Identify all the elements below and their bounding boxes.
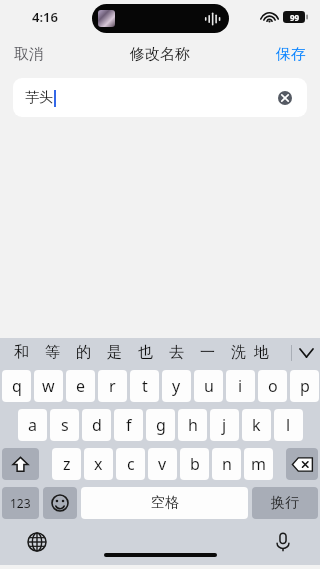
button[interactable]: d bbox=[82, 409, 111, 441]
staticText: 地 bbox=[254, 343, 268, 362]
staticText: 的 bbox=[76, 343, 91, 362]
staticText: h bbox=[188, 414, 198, 436]
button[interactable]: 地 bbox=[254, 338, 268, 367]
staticText: q bbox=[12, 375, 22, 397]
button[interactable]: 和 bbox=[6, 338, 37, 367]
button[interactable]: q bbox=[2, 370, 31, 402]
button[interactable]: Clear text bbox=[273, 86, 297, 110]
staticText: x bbox=[94, 453, 103, 475]
button[interactable]: t bbox=[130, 370, 159, 402]
staticText: i bbox=[238, 375, 243, 397]
staticText: n bbox=[222, 453, 232, 475]
button[interactable]: 芋头 bbox=[13, 78, 307, 117]
staticText: l bbox=[286, 414, 291, 436]
button[interactable]: Switch keyboard language bbox=[22, 527, 52, 557]
staticText: 取消 bbox=[14, 45, 44, 64]
button[interactable]: Emoji bbox=[43, 487, 77, 519]
staticText: 等 bbox=[45, 343, 60, 362]
button[interactable]: Backspace bbox=[286, 448, 318, 480]
button[interactable]: 空格 bbox=[81, 487, 248, 519]
button[interactable]: s bbox=[50, 409, 79, 441]
button[interactable]: y bbox=[162, 370, 191, 402]
button[interactable]: x bbox=[84, 448, 113, 480]
button[interactable]: n bbox=[212, 448, 241, 480]
button[interactable]: Expand candidates bbox=[292, 338, 320, 367]
staticText: 也 bbox=[138, 343, 153, 362]
button[interactable]: o bbox=[258, 370, 287, 402]
button[interactable]: i bbox=[226, 370, 255, 402]
button[interactable]: Voice input bbox=[268, 527, 298, 557]
staticText: v bbox=[158, 453, 167, 475]
staticText: c bbox=[127, 453, 135, 475]
staticText: o bbox=[268, 375, 278, 397]
staticText: 123 bbox=[10, 495, 31, 511]
staticText: 和 bbox=[14, 343, 29, 362]
staticText: 换行 bbox=[271, 494, 299, 512]
button[interactable]: Shift bbox=[2, 448, 39, 480]
button[interactable]: m bbox=[244, 448, 273, 480]
staticText: f bbox=[126, 414, 132, 436]
staticText: b bbox=[190, 453, 200, 475]
button[interactable]: 一 bbox=[192, 338, 223, 367]
button[interactable]: w bbox=[34, 370, 63, 402]
button[interactable]: 也 bbox=[130, 338, 161, 367]
staticText: z bbox=[63, 453, 71, 475]
button[interactable]: k bbox=[242, 409, 271, 441]
button[interactable]: 换行 bbox=[252, 487, 318, 519]
button[interactable]: z bbox=[52, 448, 81, 480]
button[interactable]: e bbox=[66, 370, 95, 402]
staticText: p bbox=[300, 375, 310, 397]
staticText: e bbox=[76, 375, 86, 397]
button[interactable]: l bbox=[274, 409, 303, 441]
button[interactable]: 等 bbox=[37, 338, 68, 367]
button[interactable]: g bbox=[146, 409, 175, 441]
staticText: m bbox=[251, 453, 266, 475]
staticText: r bbox=[109, 375, 116, 397]
button[interactable]: a bbox=[18, 409, 47, 441]
button[interactable]: 去 bbox=[161, 338, 192, 367]
staticText: 一 bbox=[200, 343, 215, 362]
staticText: 4:16 bbox=[32, 8, 58, 26]
staticText: g bbox=[156, 414, 166, 436]
button[interactable]: h bbox=[178, 409, 207, 441]
staticText: 芋头 bbox=[25, 89, 53, 107]
staticText: 空格 bbox=[151, 494, 179, 512]
button[interactable]: f bbox=[114, 409, 143, 441]
button[interactable]: p bbox=[290, 370, 319, 402]
button[interactable]: b bbox=[180, 448, 209, 480]
button[interactable]: 取消 bbox=[0, 39, 58, 70]
button[interactable]: 洗 bbox=[223, 338, 254, 367]
button[interactable]: r bbox=[98, 370, 127, 402]
button[interactable]: v bbox=[148, 448, 177, 480]
staticText: 修改名称 bbox=[130, 45, 190, 64]
button[interactable]: u bbox=[194, 370, 223, 402]
staticText: j bbox=[222, 414, 227, 436]
staticText: u bbox=[204, 375, 214, 397]
staticText: d bbox=[92, 414, 102, 436]
staticText: t bbox=[142, 375, 148, 397]
button[interactable]: 的 bbox=[68, 338, 99, 367]
staticText: s bbox=[61, 414, 69, 436]
staticText: w bbox=[42, 375, 55, 397]
button[interactable]: j bbox=[210, 409, 239, 441]
button[interactable]: 123 bbox=[2, 487, 39, 519]
staticText: 去 bbox=[169, 343, 184, 362]
staticText: 洗 bbox=[231, 343, 246, 362]
staticText: k bbox=[252, 414, 261, 436]
button[interactable]: 保存 bbox=[262, 39, 320, 70]
button[interactable]: 是 bbox=[99, 338, 130, 367]
button[interactable]: c bbox=[116, 448, 145, 480]
staticText: 保存 bbox=[276, 45, 306, 64]
staticText: 是 bbox=[107, 343, 122, 362]
staticText: y bbox=[172, 375, 181, 397]
staticText: 99 bbox=[290, 12, 300, 23]
staticText: a bbox=[28, 414, 37, 436]
